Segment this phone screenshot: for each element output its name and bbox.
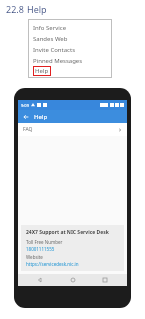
staticText: Help bbox=[27, 3, 47, 15]
button[interactable]: Invite Contacts bbox=[33, 44, 112, 55]
staticText: Help bbox=[34, 113, 48, 121]
button[interactable]: Back bbox=[30, 274, 50, 286]
button[interactable]: FAQ bbox=[18, 123, 127, 136]
staticText: https://servicedesk.nic.in bbox=[26, 261, 79, 267]
staticText: Pinned Messages bbox=[33, 57, 83, 65]
staticText: 24X7 Support at NIC Service Desk bbox=[26, 229, 109, 236]
staticText: Invite Contacts bbox=[33, 46, 76, 54]
button[interactable]: 24X7 Support at NIC Service Desk bbox=[21, 225, 124, 271]
staticText: Info Service bbox=[33, 24, 67, 32]
button[interactable]: Pinned Messages bbox=[33, 55, 112, 66]
button[interactable]: Back bbox=[18, 110, 34, 123]
staticText: FAQ bbox=[23, 126, 33, 133]
button[interactable]: Home bbox=[63, 274, 83, 286]
staticText: Toll Free Number bbox=[26, 239, 63, 245]
staticText: 9:09 bbox=[21, 103, 29, 108]
button[interactable]: Sandes Web bbox=[33, 33, 112, 44]
staticText: 18001111555 bbox=[26, 246, 55, 252]
button[interactable]: Recent apps bbox=[95, 274, 115, 286]
staticText: Website bbox=[26, 254, 43, 260]
button[interactable]: Info Service bbox=[33, 22, 112, 33]
staticText: Help bbox=[35, 67, 49, 75]
staticText: Sandes Web bbox=[33, 35, 68, 43]
staticText: 22.8 bbox=[6, 3, 24, 15]
button[interactable]: Help bbox=[35, 67, 49, 75]
